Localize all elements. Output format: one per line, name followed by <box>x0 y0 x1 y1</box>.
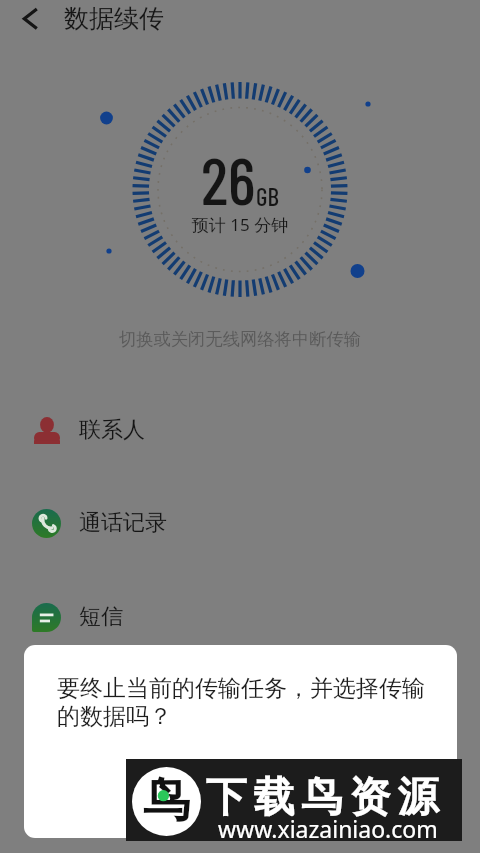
staticText: 短信 <box>79 603 123 631</box>
staticText: 切换或关闭无线网络将中断传输 <box>0 328 480 350</box>
staticText: 数据续传 <box>64 3 164 34</box>
button[interactable]: Back <box>4 0 56 38</box>
staticText: 下载鸟资源 <box>202 772 442 824</box>
staticText: 联系人 <box>79 416 145 444</box>
button[interactable]: 通话记录 <box>0 476 480 570</box>
staticText: www.xiazainiao.com <box>218 813 438 844</box>
staticText: 通话记录 <box>79 509 167 537</box>
staticText: 26 <box>201 140 256 218</box>
staticText: GB <box>256 181 279 211</box>
staticText: 要终止当前的传输任务，并选择传输的数据吗？ <box>57 674 437 731</box>
button[interactable]: 短信 <box>0 570 480 664</box>
button[interactable]: 联系人 <box>0 383 480 477</box>
staticText: 预计 15 分钟 <box>0 213 480 236</box>
staticText: 鸟 <box>143 771 190 830</box>
